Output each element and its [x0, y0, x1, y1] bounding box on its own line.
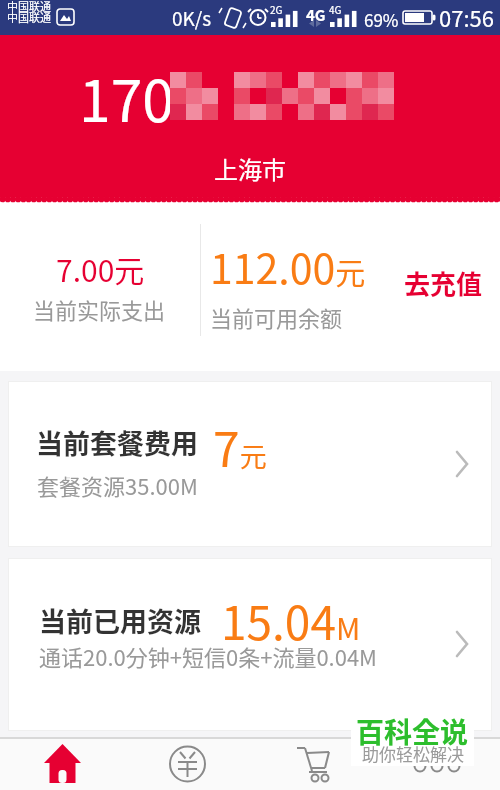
staticText: 0K/s: [172, 4, 212, 32]
staticText: 当前已用资源: [39, 601, 201, 640]
staticText: 112.00元: [210, 236, 366, 295]
button[interactable]: [0, 739, 125, 790]
staticText: 2G: [270, 2, 283, 16]
staticText: 07:56: [439, 1, 494, 33]
staticText: 中国联通: [7, 0, 51, 14]
staticText: 当前实际支出: [33, 293, 166, 325]
staticText: 当前套餐费用: [36, 423, 198, 462]
staticText: 69%: [364, 7, 399, 32]
staticText: 中国联通: [7, 9, 51, 25]
button[interactable]: 当前套餐费用: [8, 381, 492, 547]
staticText: 百科全说: [356, 711, 469, 752]
button[interactable]: [250, 739, 375, 790]
staticText: 通话20.0分钟+短信0条+流量0.04M: [39, 640, 377, 672]
button[interactable]: 当前已用资源: [8, 558, 492, 731]
staticText: 套餐资源35.00M: [37, 469, 198, 501]
staticText: 170: [79, 56, 174, 139]
staticText: 助你轻松解决: [362, 741, 464, 766]
staticText: 7.00元: [56, 247, 145, 290]
staticText: 4G: [329, 2, 342, 16]
staticText: 当前可用余额: [210, 301, 343, 333]
button[interactable]: [125, 739, 250, 790]
button[interactable]: 去充值: [394, 255, 492, 311]
staticText: 上海市: [214, 151, 286, 186]
staticText: 去充值: [404, 264, 483, 302]
button[interactable]: [375, 739, 500, 790]
staticText: 4G: [306, 4, 326, 26]
button[interactable]: 7.00元: [0, 197, 500, 371]
staticText: 15.04M: [221, 587, 361, 654]
staticText: 7元: [213, 411, 267, 481]
